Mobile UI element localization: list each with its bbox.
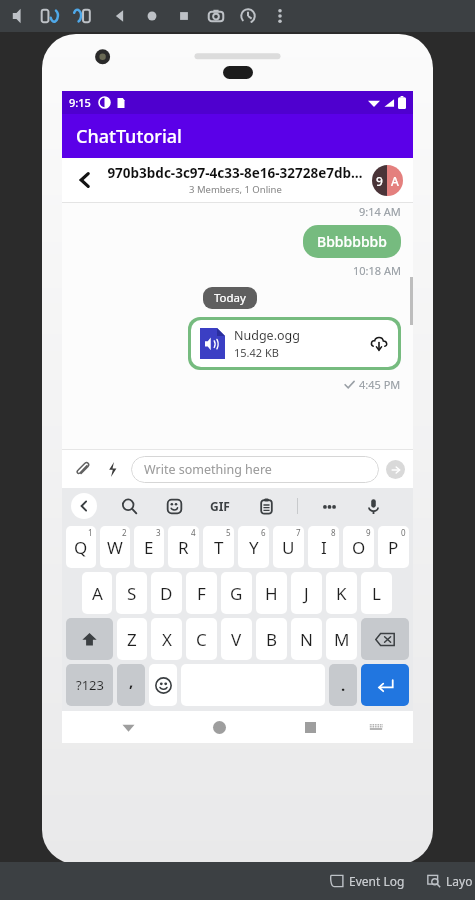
button[interactable]: A bbox=[82, 572, 112, 614]
staticText: P bbox=[388, 536, 399, 559]
button[interactable]: V bbox=[221, 618, 252, 660]
button[interactable]: Nudge.ogg bbox=[188, 317, 401, 370]
button[interactable]: T bbox=[203, 526, 234, 568]
button[interactable]: Z bbox=[117, 618, 147, 660]
staticText: 1 bbox=[88, 527, 93, 538]
button[interactable]: Shift bbox=[66, 618, 113, 660]
button[interactable]: Rotate left bbox=[34, 0, 66, 32]
staticText: J bbox=[304, 582, 309, 605]
button[interactable]: More bbox=[264, 0, 296, 32]
staticText: 15.42 KB bbox=[234, 345, 279, 360]
button[interactable]: More options bbox=[316, 493, 342, 519]
button[interactable]: Overview bbox=[168, 0, 200, 32]
button[interactable]: Close toolbar bbox=[71, 493, 97, 519]
staticText: . bbox=[341, 675, 346, 695]
button[interactable]: Enter bbox=[361, 664, 409, 706]
button[interactable]: Hide keyboard bbox=[115, 714, 141, 740]
staticText: I bbox=[321, 536, 327, 559]
button[interactable]: D bbox=[151, 572, 182, 614]
button[interactable]: L bbox=[361, 572, 392, 614]
staticText: 3 Members, 1 Online bbox=[189, 183, 282, 196]
button[interactable]: N bbox=[291, 618, 322, 660]
button[interactable]: Bbbbbbbb bbox=[303, 225, 401, 258]
staticText: 0 bbox=[401, 527, 406, 538]
button[interactable]: Layo bbox=[427, 873, 475, 889]
button[interactable]: M bbox=[326, 618, 357, 660]
button[interactable]: C bbox=[186, 618, 217, 660]
button[interactable]: History bbox=[232, 0, 264, 32]
staticText: 9:14 AM bbox=[359, 204, 401, 219]
button[interactable]: Search bbox=[116, 493, 142, 519]
staticText: 4:45 PM bbox=[359, 377, 401, 392]
button[interactable]: E bbox=[134, 526, 164, 568]
staticText: K bbox=[336, 582, 347, 605]
button[interactable]: Recents bbox=[297, 714, 323, 740]
staticText: T bbox=[214, 536, 224, 559]
button[interactable]: Event Log bbox=[324, 873, 411, 889]
staticText: R bbox=[178, 536, 189, 559]
button[interactable]: Backspace bbox=[361, 618, 409, 660]
button[interactable]: Home bbox=[206, 714, 232, 740]
button[interactable]: Members bbox=[372, 165, 403, 196]
button[interactable]: Send bbox=[386, 460, 405, 479]
button[interactable]: F bbox=[186, 572, 217, 614]
button[interactable]: R bbox=[168, 526, 199, 568]
staticText: Y bbox=[249, 536, 259, 559]
button[interactable]: W bbox=[100, 526, 130, 568]
staticText: M bbox=[334, 628, 350, 651]
staticText: 8 bbox=[331, 527, 336, 538]
staticText: B bbox=[266, 628, 278, 651]
button[interactable]: Download bbox=[368, 333, 389, 354]
button[interactable]: J bbox=[291, 572, 322, 614]
button[interactable]: ChatTutorial bbox=[62, 114, 413, 158]
button[interactable]: Clipboard bbox=[253, 493, 279, 519]
staticText: Write something here bbox=[144, 461, 272, 478]
button[interactable]: Q bbox=[66, 526, 96, 568]
button[interactable]: Y bbox=[238, 526, 269, 568]
button[interactable]: Emoji bbox=[149, 664, 177, 706]
staticText: 9 bbox=[376, 173, 383, 189]
button[interactable]: Back bbox=[104, 0, 136, 32]
button[interactable]: Screenshot bbox=[200, 0, 232, 32]
button[interactable]: Stickers bbox=[161, 493, 187, 519]
button[interactable]: Attach bbox=[70, 456, 96, 482]
button[interactable]: ?123 bbox=[66, 664, 113, 706]
staticText: 2 bbox=[122, 527, 127, 538]
button[interactable]: Back bbox=[62, 158, 413, 202]
button[interactable]: B bbox=[256, 618, 287, 660]
button[interactable]: Quick actions bbox=[99, 456, 125, 482]
button[interactable]: Rotate right bbox=[66, 0, 98, 32]
staticText: GIF bbox=[210, 498, 230, 514]
button[interactable]: Voice input bbox=[360, 493, 386, 519]
button[interactable]: O bbox=[343, 526, 374, 568]
button[interactable]: I bbox=[308, 526, 339, 568]
button[interactable]: Back bbox=[72, 167, 98, 193]
staticText: Q bbox=[74, 536, 88, 559]
staticText: 9:15 bbox=[69, 95, 91, 110]
staticText: S bbox=[127, 582, 137, 605]
button[interactable]: S bbox=[116, 572, 147, 614]
button[interactable]: G bbox=[221, 572, 252, 614]
button[interactable]: Volume bbox=[2, 0, 34, 32]
staticText: ?123 bbox=[76, 676, 104, 694]
button[interactable]: Switch keyboard bbox=[363, 714, 389, 740]
button[interactable]: K bbox=[326, 572, 357, 614]
button[interactable]: P bbox=[378, 526, 409, 568]
button[interactable]: H bbox=[256, 572, 287, 614]
staticText: 10:18 AM bbox=[353, 263, 401, 278]
staticText: U bbox=[282, 536, 295, 559]
button[interactable]: , bbox=[117, 664, 145, 706]
button[interactable]: GIF bbox=[205, 493, 235, 519]
staticText: 5 bbox=[226, 527, 231, 538]
staticText: C bbox=[196, 628, 207, 651]
button[interactable]: U bbox=[273, 526, 304, 568]
button[interactable]: Write something here bbox=[131, 456, 379, 483]
staticText: Z bbox=[127, 628, 137, 651]
button[interactable]: X bbox=[151, 618, 182, 660]
button[interactable]: Home bbox=[136, 0, 168, 32]
staticText: E bbox=[144, 536, 154, 559]
staticText: ChatTutorial bbox=[76, 124, 182, 149]
button[interactable]: . bbox=[329, 664, 357, 706]
staticText: G bbox=[230, 582, 243, 605]
